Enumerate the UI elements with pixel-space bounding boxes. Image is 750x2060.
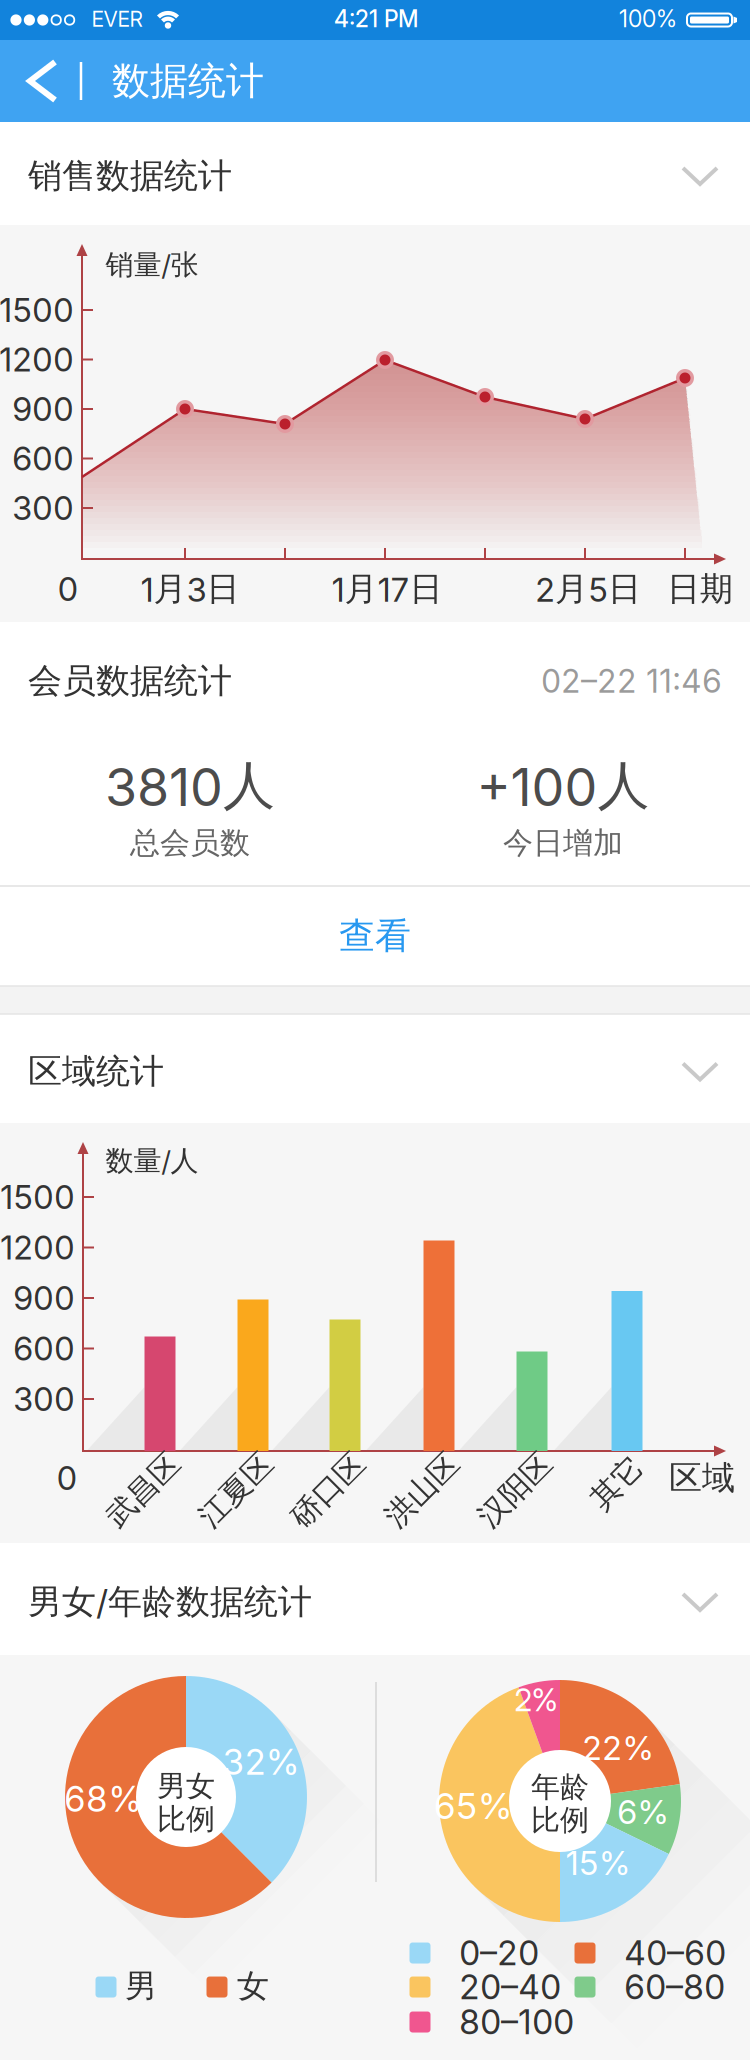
- staticText: 20–40: [459, 1967, 561, 2007]
- staticText: 32%: [222, 1741, 299, 1783]
- staticText: 其它: [587, 1465, 647, 1501]
- staticText: 武昌区: [98, 1472, 188, 1508]
- staticText: 300: [13, 1379, 75, 1418]
- staticText: 男: [125, 1966, 157, 2006]
- staticText: EVER: [91, 7, 142, 31]
- staticText: 65%: [433, 1785, 512, 1827]
- staticText: 总会员数: [130, 825, 250, 861]
- staticText: 02–22 11:46: [541, 662, 722, 700]
- staticText: 60–80: [624, 1967, 725, 2007]
- staticText: 300: [12, 488, 74, 527]
- staticText: 68%: [64, 1778, 142, 1820]
- staticText: 1月3日: [140, 569, 239, 609]
- staticText: 比例: [157, 1801, 215, 1837]
- button[interactable]: 销售数据统计: [0, 122, 750, 224]
- staticText: 0: [57, 569, 78, 608]
- staticText: 22%: [582, 1728, 654, 1767]
- staticText: 查看: [339, 914, 411, 958]
- staticText: 年龄: [531, 1769, 589, 1805]
- staticText: 1500: [0, 1177, 75, 1216]
- staticText: 数量/人: [105, 1144, 198, 1178]
- staticText: 0: [56, 1458, 77, 1497]
- staticText: 900: [13, 1278, 75, 1317]
- staticText: 江夏区: [191, 1472, 281, 1508]
- staticText: 1月17日: [331, 569, 442, 609]
- staticText: 0–20: [459, 1933, 539, 1973]
- staticText: 1500: [0, 290, 74, 329]
- staticText: 销量/张: [105, 248, 198, 282]
- staticText: 洪山区: [377, 1472, 467, 1508]
- staticText: 600: [13, 1329, 75, 1368]
- staticText: 男女: [157, 1768, 215, 1804]
- staticText: 比例: [531, 1802, 589, 1838]
- staticText: 男女/年龄数据统计: [28, 1581, 312, 1623]
- staticText: 2%: [514, 1682, 557, 1718]
- staticText: +100人: [476, 754, 649, 818]
- staticText: 6%: [617, 1792, 669, 1831]
- staticText: 数据统计: [112, 58, 264, 104]
- staticText: 40–60: [624, 1933, 726, 1973]
- staticText: 区域: [669, 1458, 735, 1498]
- staticText: 女: [237, 1966, 269, 2006]
- staticText: 区域统计: [28, 1051, 164, 1092]
- staticText: 3810人: [105, 754, 275, 818]
- staticText: 2月5日: [535, 569, 641, 609]
- staticText: 1200: [0, 1228, 75, 1267]
- staticText: 600: [12, 439, 74, 478]
- staticText: 15%: [565, 1843, 630, 1882]
- staticText: 900: [12, 389, 74, 428]
- staticText: 4:21 PM: [334, 5, 418, 32]
- staticText: 销售数据统计: [28, 155, 232, 197]
- staticText: 1200: [0, 340, 74, 379]
- staticText: 80–100: [459, 2002, 574, 2042]
- staticText: 日期: [667, 569, 733, 609]
- staticText: 100%: [619, 5, 677, 32]
- staticText: 汉阳区: [470, 1472, 560, 1508]
- staticText: 会员数据统计: [28, 660, 232, 702]
- staticText: 硚口区: [283, 1472, 373, 1508]
- button[interactable]: 区域统计: [0, 1017, 750, 1119]
- button[interactable]: 男女/年龄数据统计: [0, 1548, 750, 1650]
- button[interactable]: [12, 42, 72, 120]
- button[interactable]: 查看: [0, 887, 750, 985]
- staticText: 今日增加: [503, 825, 623, 861]
